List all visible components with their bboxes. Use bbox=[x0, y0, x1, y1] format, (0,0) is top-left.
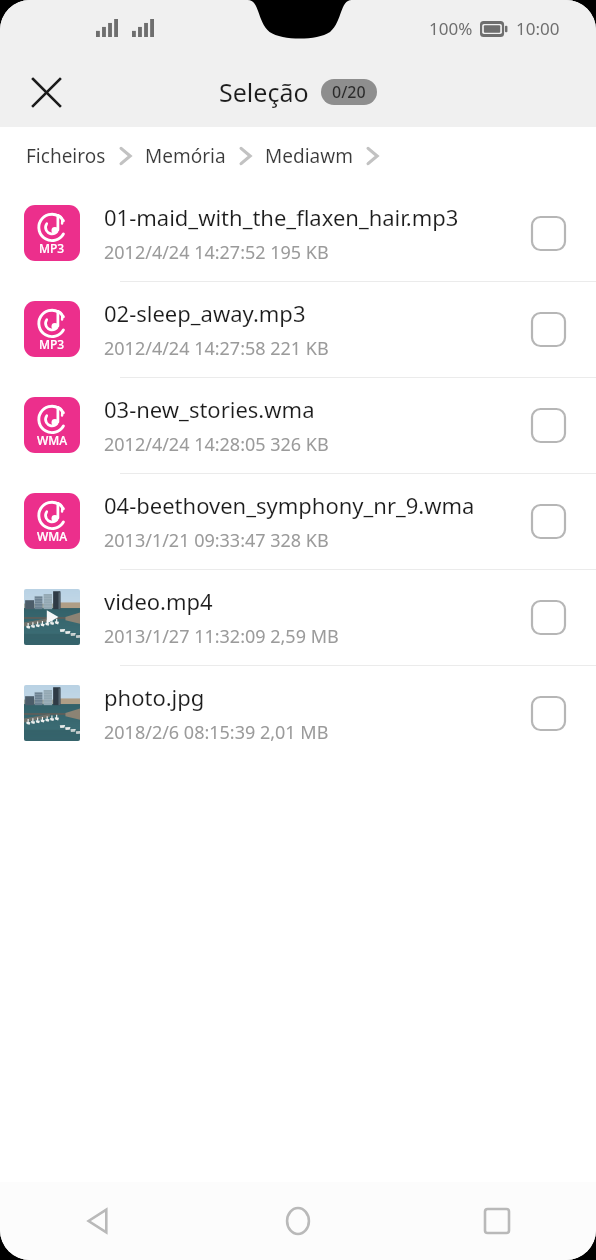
button[interactable]: Close bbox=[20, 66, 72, 118]
button[interactable]: Back bbox=[0, 1182, 198, 1260]
staticText: Mediawm bbox=[265, 143, 353, 169]
staticText: photo.jpg bbox=[104, 682, 205, 712]
button[interactable]: Ficheiros bbox=[26, 143, 106, 169]
staticText: 2013/1/27 11:32:09 2,59 MB bbox=[104, 624, 339, 649]
staticText: MP3 bbox=[39, 240, 65, 256]
button[interactable]: photo.jpg bbox=[0, 665, 596, 761]
button[interactable]: Select video.mp4 bbox=[526, 595, 570, 639]
staticText: video.mp4 bbox=[104, 586, 213, 616]
staticText: 2012/4/24 14:27:52 195 KB bbox=[104, 240, 329, 265]
button[interactable]: Recent apps bbox=[397, 1182, 596, 1260]
staticText: 2012/4/24 14:28:05 326 KB bbox=[104, 432, 329, 457]
staticText: 02-sleep_away.mp3 bbox=[104, 298, 306, 328]
button[interactable]: MP3 bbox=[0, 281, 596, 377]
staticText: WMA bbox=[37, 528, 68, 544]
button[interactable]: Select 02-sleep_away.mp3 bbox=[526, 307, 570, 351]
button[interactable]: Select 01-maid_with_the_flaxen_hair.mp3 bbox=[526, 211, 570, 255]
button[interactable]: Memória bbox=[145, 143, 226, 169]
button[interactable]: video.mp4 bbox=[0, 569, 596, 665]
button[interactable]: Select 03-new_stories.wma bbox=[526, 403, 570, 447]
staticText: Ficheiros bbox=[26, 143, 106, 169]
button[interactable]: Select 04-beethoven_symphony_nr_9.wma bbox=[526, 499, 570, 543]
staticText: 01-maid_with_the_flaxen_hair.mp3 bbox=[104, 202, 459, 232]
button[interactable]: Home bbox=[198, 1182, 397, 1260]
staticText: 04-beethoven_symphony_nr_9.wma bbox=[104, 490, 475, 520]
staticText: 0/20 bbox=[332, 81, 366, 103]
staticText: MP3 bbox=[39, 336, 65, 352]
button[interactable]: Select photo.jpg bbox=[526, 691, 570, 735]
staticText: Seleção bbox=[219, 75, 309, 109]
button[interactable]: WMA bbox=[0, 473, 596, 569]
staticText: 2012/4/24 14:27:58 221 KB bbox=[104, 336, 329, 361]
button[interactable]: Mediawm bbox=[265, 143, 353, 169]
staticText: Memória bbox=[145, 143, 226, 169]
staticText: 10:00 bbox=[516, 17, 560, 40]
button[interactable]: MP3 bbox=[0, 185, 596, 281]
staticText: WMA bbox=[37, 432, 68, 448]
staticText: 2013/1/21 09:33:47 328 KB bbox=[104, 528, 329, 553]
staticText: 100% bbox=[429, 17, 473, 40]
staticText: 2018/2/6 08:15:39 2,01 MB bbox=[104, 720, 329, 745]
staticText: 03-new_stories.wma bbox=[104, 394, 315, 424]
button[interactable]: WMA bbox=[0, 377, 596, 473]
